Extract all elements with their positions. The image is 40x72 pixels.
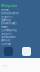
button[interactable]: Features bbox=[1, 15, 40, 18]
button[interactable]: App Store bbox=[4, 47, 13, 56]
staticText: Features bbox=[1, 15, 12, 18]
button[interactable]: About bbox=[1, 39, 40, 42]
button[interactable]: News bbox=[1, 25, 40, 28]
staticText: Gallery bbox=[1, 18, 10, 22]
button[interactable]: Resources bbox=[1, 35, 40, 39]
button[interactable]: Support bbox=[1, 32, 40, 35]
staticText: Home bbox=[1, 8, 9, 11]
staticText: Contact bbox=[1, 42, 11, 45]
button[interactable]: Google Play bbox=[22, 47, 31, 56]
staticText: Wikipedia bbox=[1, 4, 17, 8]
button[interactable]: Introduction bbox=[1, 11, 40, 15]
staticText: Introduction bbox=[1, 11, 19, 15]
staticText: About bbox=[1, 38, 10, 42]
staticText: News bbox=[1, 25, 7, 28]
button[interactable]: Community bbox=[1, 28, 40, 32]
staticText: Terms bbox=[2, 65, 7, 67]
staticText: Downloads bbox=[1, 21, 16, 25]
button[interactable]: Contact bbox=[1, 42, 40, 45]
staticText: Community bbox=[1, 28, 16, 32]
button[interactable]: Gallery bbox=[1, 18, 40, 22]
staticText: Resources bbox=[1, 35, 15, 39]
staticText: Support bbox=[1, 32, 12, 35]
button[interactable]: Home bbox=[1, 8, 40, 11]
button[interactable]: Downloads bbox=[1, 22, 40, 25]
